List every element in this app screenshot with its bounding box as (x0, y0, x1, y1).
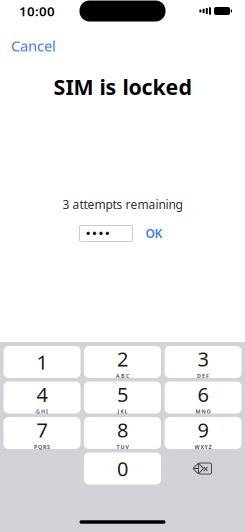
button[interactable]: Delete (164, 452, 241, 484)
staticText: T U V (116, 443, 128, 451)
staticText: 8 (117, 416, 128, 443)
staticText: 10:00 (19, 2, 55, 20)
staticText: 1 (36, 349, 47, 375)
staticText: J K L (117, 408, 127, 415)
staticText: 3 attempts remaining (62, 196, 182, 212)
staticText: 3 (197, 345, 208, 372)
button[interactable]: 3 (164, 346, 241, 378)
button[interactable]: 1 (3, 346, 80, 378)
button[interactable]: 4 (3, 381, 80, 413)
button[interactable]: 2 (84, 346, 161, 378)
staticText: 4 (36, 381, 47, 407)
staticText: 5 (117, 381, 128, 407)
button[interactable]: 5 (84, 381, 161, 413)
staticText: OK (145, 225, 162, 241)
staticText: 2 (117, 345, 128, 372)
staticText: Cancel (11, 36, 56, 55)
staticText: P Q R S (34, 443, 50, 451)
staticText: SIM is locked (53, 72, 191, 101)
button[interactable]: 8 (84, 417, 161, 449)
staticText: 9 (197, 416, 208, 443)
button[interactable]: 6 (164, 381, 241, 413)
staticText: A B C (116, 372, 129, 380)
staticText: × (202, 461, 208, 476)
button[interactable]: Cancel (0, 31, 67, 60)
staticText: D E F (197, 372, 209, 380)
button[interactable]: 7 (3, 417, 80, 449)
staticText: 0 (117, 455, 128, 482)
staticText: W X Y Z (194, 443, 211, 451)
button[interactable]: 0 (84, 452, 161, 484)
staticText: M N O (195, 408, 210, 415)
staticText: 6 (197, 381, 208, 407)
staticText: 7 (36, 416, 47, 443)
button[interactable]: OK (142, 222, 165, 244)
staticText: G H I (36, 408, 48, 415)
button[interactable]: 9 (164, 417, 241, 449)
